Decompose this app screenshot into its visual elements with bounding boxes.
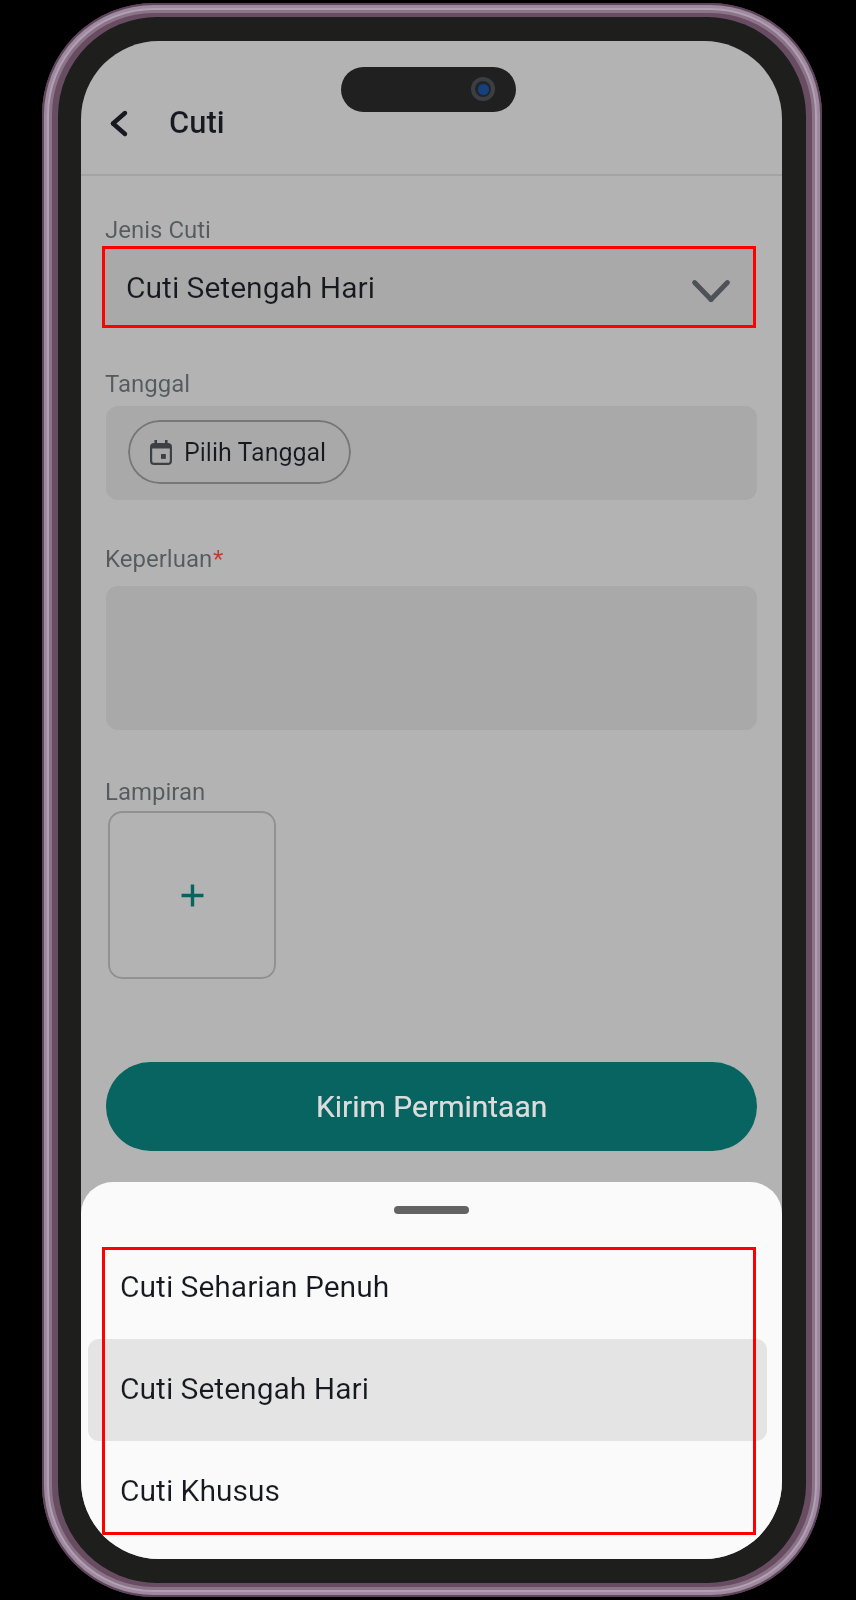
staticText: Kirim Permintaan: [316, 1089, 548, 1124]
button[interactable]: Cuti Khusus: [102, 1450, 756, 1552]
staticText: Cuti Setengah Hari: [120, 1371, 369, 1406]
staticText: Cuti Setengah Hari: [126, 270, 375, 305]
button[interactable]: Cuti Setengah Hari: [102, 246, 756, 328]
staticText: Cuti Khusus: [120, 1473, 281, 1508]
button[interactable]: Cuti Setengah Hari: [102, 1348, 756, 1450]
staticText: Lampiran: [105, 778, 206, 806]
button[interactable]: Tambah lampiran: [108, 811, 276, 979]
staticText: Cuti: [169, 104, 225, 140]
button[interactable]: Back: [94, 99, 143, 148]
staticText: *: [213, 545, 224, 573]
staticText: Tanggal: [105, 370, 191, 398]
staticText: Jenis Cuti: [105, 216, 211, 244]
staticText: Keperluan: [105, 545, 213, 573]
staticText: Cuti Seharian Penuh: [120, 1269, 390, 1304]
staticText: Pilih Tanggal: [184, 438, 327, 467]
button[interactable]: Kirim Permintaan: [106, 1062, 757, 1151]
button[interactable]: Cuti Seharian Penuh: [102, 1246, 756, 1348]
button[interactable]: Pilih Tanggal: [128, 420, 351, 484]
